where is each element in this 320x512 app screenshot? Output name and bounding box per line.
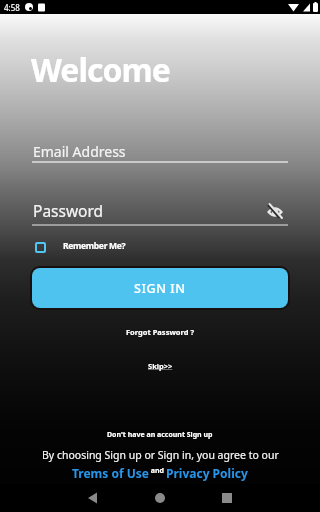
button[interactable]: Don't have an account Sign up bbox=[107, 430, 213, 440]
staticText: Password bbox=[33, 200, 104, 221]
staticText: By choosing Sign up or Sign in, you agre… bbox=[42, 448, 279, 462]
button[interactable]: Privacy Policy bbox=[166, 465, 248, 481]
button[interactable] bbox=[35, 242, 46, 253]
button[interactable] bbox=[267, 204, 283, 220]
button[interactable] bbox=[106, 484, 213, 512]
button[interactable] bbox=[213, 484, 320, 512]
staticText: SIGN IN bbox=[134, 280, 186, 297]
button[interactable]: Forgot Password ? bbox=[126, 327, 194, 337]
button[interactable]: Trems of Use bbox=[72, 465, 149, 481]
staticText: Email Address bbox=[33, 142, 126, 161]
button[interactable]: SIGN IN bbox=[32, 268, 288, 308]
button[interactable] bbox=[0, 484, 106, 512]
staticText: 4:58 bbox=[4, 2, 20, 13]
button[interactable]: Skip>> bbox=[148, 361, 173, 371]
staticText: and bbox=[149, 466, 166, 476]
button[interactable]: Remember Me? bbox=[63, 240, 126, 252]
staticText: Welcome bbox=[31, 48, 170, 92]
